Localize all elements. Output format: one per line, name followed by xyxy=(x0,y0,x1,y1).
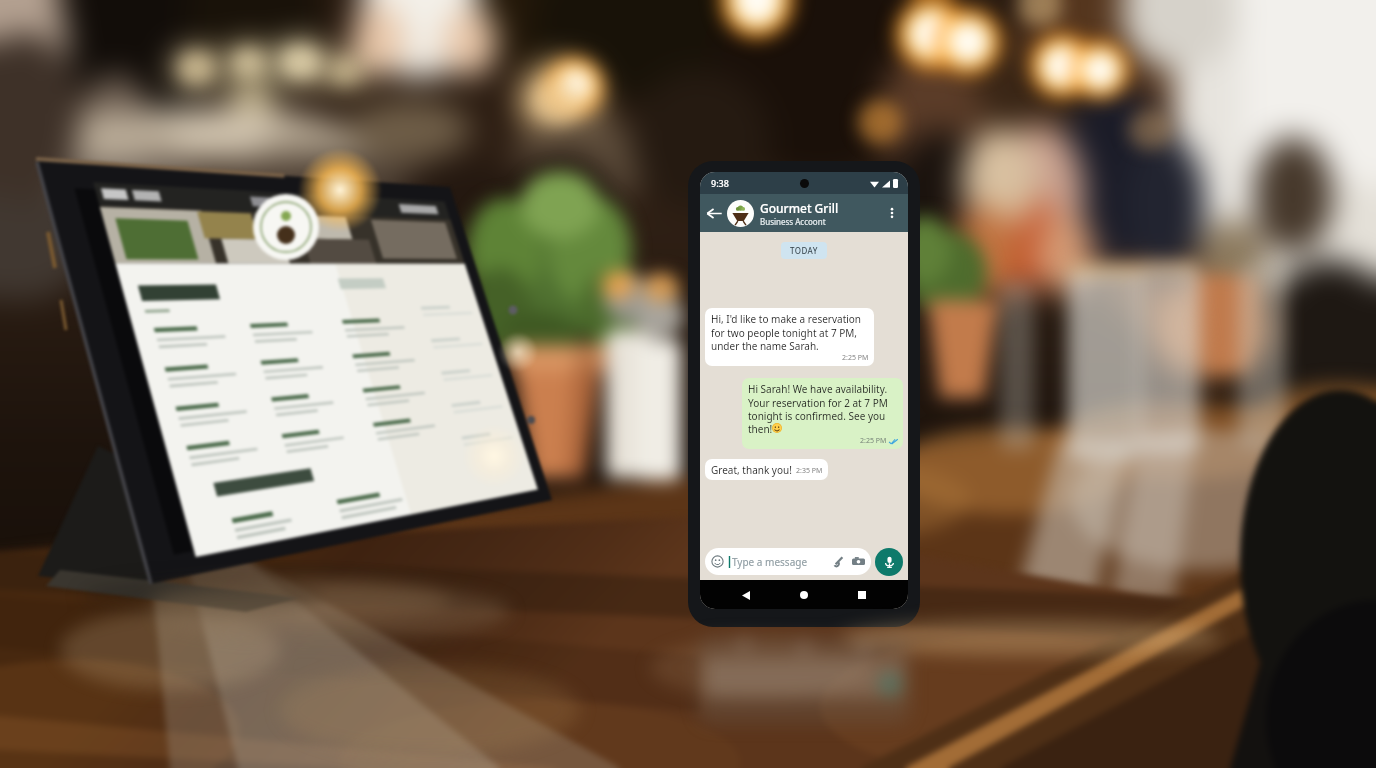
staticText: Hi Sarah! We have availability. Your res… xyxy=(748,382,898,436)
other: Emoji xyxy=(711,555,724,568)
staticText: Gourmet Grill xyxy=(760,200,839,216)
button[interactable]: Record voice message xyxy=(875,548,903,576)
button[interactable]: Back xyxy=(700,194,908,232)
staticText: 2:35 PM xyxy=(796,466,823,476)
staticText: 2:25 PM xyxy=(842,353,869,363)
other: Camera xyxy=(852,555,865,568)
staticText: 9:38 xyxy=(711,177,729,189)
button[interactable]: Recent apps xyxy=(850,583,874,607)
button[interactable]: Hi Sarah! We have availability. Your res… xyxy=(742,378,903,449)
staticText: Hi, I'd like to make a reservation for t… xyxy=(711,312,869,353)
staticText: TODAY xyxy=(790,245,818,256)
button[interactable]: Back xyxy=(734,583,758,607)
staticText: Type a message xyxy=(732,555,832,569)
staticText: 2:25 PM xyxy=(860,436,887,446)
staticText: Great, thank you! xyxy=(711,463,792,477)
button[interactable]: More options xyxy=(884,205,900,221)
button[interactable]: Emoji xyxy=(705,548,871,575)
button[interactable]: Great, thank you! xyxy=(705,459,828,480)
other: Attach file xyxy=(832,555,845,568)
button[interactable]: TODAY xyxy=(781,242,827,259)
staticText: Business Accoont xyxy=(760,216,826,227)
button[interactable]: Home xyxy=(792,583,816,607)
button[interactable]: Back xyxy=(705,204,724,223)
button[interactable]: Hi, I'd like to make a reservation for t… xyxy=(705,308,874,366)
